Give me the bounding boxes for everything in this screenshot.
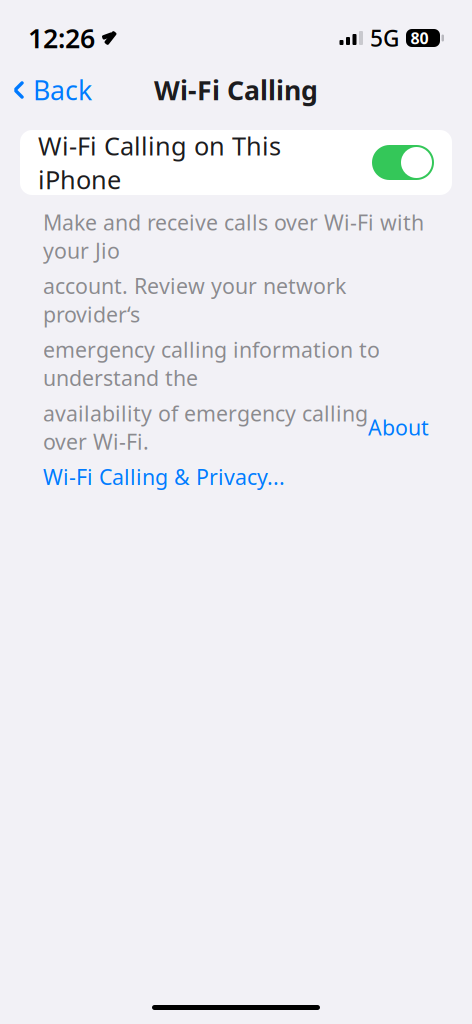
staticText: Back (33, 72, 92, 108)
button[interactable]: About (368, 413, 429, 441)
staticText: About (368, 413, 429, 441)
staticText: 12:26 (28, 20, 95, 56)
staticText: account. Review your network provider‘s (43, 272, 346, 328)
staticText: Wi-Fi Calling on This iPhone (38, 129, 281, 196)
staticText: 80 (410, 27, 428, 49)
staticText: Wi-Fi Calling (154, 72, 318, 108)
staticText: emergency calling information to underst… (43, 335, 380, 392)
staticText: Make and receive calls over Wi-Fi with y… (43, 208, 424, 265)
staticText: 5G (370, 23, 399, 53)
staticText: Wi-Fi Calling & Privacy... (43, 463, 285, 491)
button[interactable]: Back (0, 64, 104, 116)
button[interactable]: Wi-Fi Calling & Privacy... (43, 463, 285, 491)
button[interactable]: Wi-Fi Calling on This iPhone (20, 130, 452, 195)
staticText: availability of emergency calling over W… (43, 399, 368, 456)
